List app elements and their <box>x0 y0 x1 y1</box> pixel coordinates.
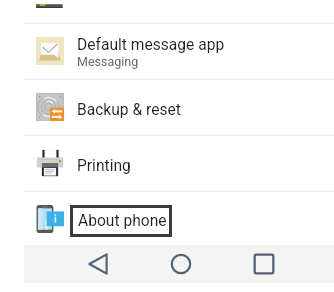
staticText: Backup & reset <box>77 101 181 119</box>
button[interactable]: Recent apps <box>245 245 283 283</box>
button[interactable]: Backup & reset <box>0 79 334 135</box>
staticText: Messaging <box>77 54 139 69</box>
staticText: Printing <box>77 157 131 175</box>
button[interactable]: Printing <box>0 135 334 191</box>
staticText: Default message app <box>77 36 225 54</box>
button[interactable]: Back <box>79 245 117 283</box>
staticText: About phone <box>78 212 167 230</box>
button[interactable]: About phone <box>0 191 334 247</box>
button[interactable]: Home <box>162 245 200 283</box>
button[interactable]: Default message app <box>0 23 334 79</box>
